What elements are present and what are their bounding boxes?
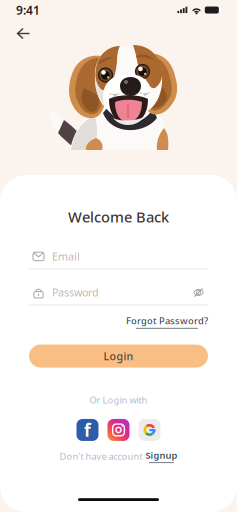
staticText: Login [103, 349, 133, 363]
button[interactable]: Back [9, 20, 38, 47]
staticText: Forgot Password? [126, 314, 208, 327]
staticText: Password [52, 285, 99, 300]
staticText: f [84, 418, 91, 441]
button[interactable]: Forgot Password? [126, 314, 208, 329]
staticText: Or Login with [89, 394, 147, 406]
staticText: 9:41 [16, 2, 40, 18]
button[interactable]: Log in with Google [138, 419, 160, 441]
staticText: Don't have account [59, 450, 142, 462]
button[interactable]: Login [29, 345, 208, 368]
staticText: Email [52, 249, 80, 264]
staticText: Signup [145, 449, 177, 461]
button[interactable]: Log in with Facebook [76, 419, 98, 441]
staticText: Welcome Back [68, 207, 169, 226]
button[interactable]: Signup [145, 449, 177, 463]
button[interactable]: Log in with Instagram [107, 419, 129, 441]
